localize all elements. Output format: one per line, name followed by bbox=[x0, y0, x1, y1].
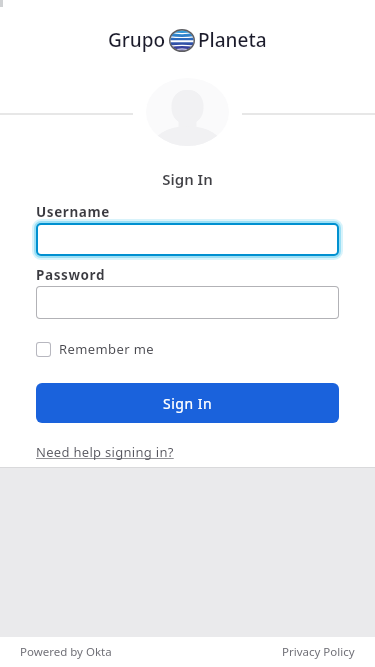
button[interactable]: Sign In bbox=[36, 383, 339, 423]
staticText: Planeta bbox=[198, 27, 267, 53]
button[interactable] bbox=[36, 286, 339, 319]
staticText: Powered by Okta bbox=[20, 644, 112, 660]
staticText: Username bbox=[36, 203, 110, 221]
staticText: Password bbox=[36, 266, 106, 284]
button[interactable]: Remember me bbox=[36, 340, 155, 358]
staticText: Sign In bbox=[163, 394, 213, 413]
button[interactable]: Privacy Policy bbox=[282, 644, 355, 660]
staticText: Remember me bbox=[59, 340, 155, 358]
button[interactable] bbox=[36, 223, 339, 256]
button[interactable]: Need help signing in? bbox=[36, 443, 174, 461]
staticText: Grupo bbox=[108, 27, 166, 53]
staticText: Sign In bbox=[0, 169, 375, 189]
